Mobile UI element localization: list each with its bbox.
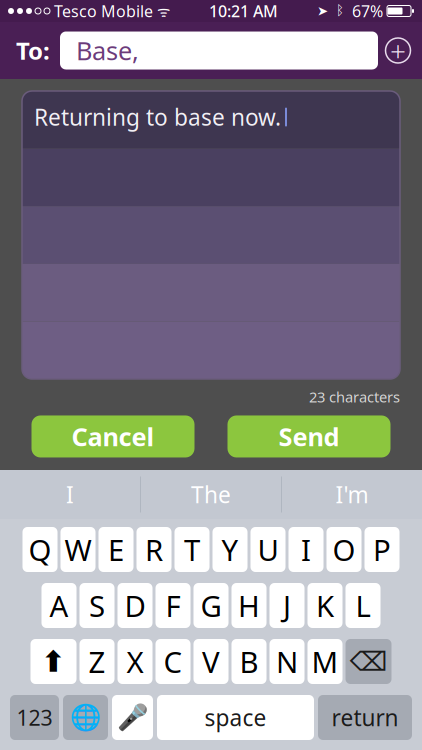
staticText: P: [373, 530, 391, 569]
staticText: Y: [221, 530, 238, 569]
staticText: O: [332, 530, 355, 569]
staticText: H: [238, 586, 260, 625]
staticText: space: [204, 702, 266, 732]
button[interactable]: Cancel: [31, 415, 194, 457]
staticText: Cancel: [71, 420, 154, 453]
staticText: V: [202, 642, 220, 681]
staticText: M: [311, 642, 338, 681]
staticText: Send: [278, 420, 339, 453]
button[interactable]: H: [231, 583, 266, 628]
button[interactable]: X: [117, 639, 152, 684]
button[interactable]: G: [193, 583, 228, 628]
button[interactable]: M: [307, 639, 342, 684]
staticText: The: [191, 479, 231, 509]
button[interactable]: space: [157, 695, 314, 740]
button[interactable]: I'm: [282, 470, 422, 518]
button[interactable]: D: [117, 583, 152, 628]
button[interactable]: U: [250, 527, 285, 572]
button[interactable]: B: [231, 639, 266, 684]
staticText: J: [283, 586, 291, 625]
staticText: E: [108, 530, 124, 569]
button[interactable]: return: [318, 695, 412, 740]
staticText: ᯤ: [153, 1, 170, 21]
staticText: 10:21 AM: [209, 0, 278, 22]
staticText: Tesco Mobile: [50, 0, 153, 22]
button[interactable]: Z: [79, 639, 114, 684]
staticText: D: [124, 586, 145, 625]
button[interactable]: Shift: [30, 639, 76, 684]
button[interactable]: V: [193, 639, 228, 684]
button[interactable]: C: [155, 639, 190, 684]
staticText: K: [316, 586, 334, 625]
staticText: L: [355, 586, 370, 625]
button[interactable]: I: [0, 470, 140, 518]
button[interactable]: Send: [227, 415, 390, 457]
button[interactable]: S: [79, 583, 114, 628]
staticText: ➤: [317, 3, 328, 18]
staticText: +: [390, 32, 406, 69]
button[interactable]: A: [41, 583, 76, 628]
button[interactable]: Base,: [60, 31, 378, 69]
button[interactable]: I: [288, 527, 323, 572]
staticText: I: [301, 530, 311, 569]
staticText: G: [200, 586, 221, 625]
staticText: W: [64, 530, 91, 569]
staticText: 67%: [352, 0, 383, 22]
staticText: B: [239, 642, 258, 681]
button[interactable]: T: [174, 527, 209, 572]
staticText: U: [257, 530, 278, 569]
button[interactable]: L: [345, 583, 380, 628]
staticText: return: [331, 702, 398, 732]
button[interactable]: Add recipient: [378, 30, 418, 70]
staticText: To:: [16, 35, 50, 66]
button[interactable]: J: [269, 583, 304, 628]
staticText: Q: [28, 530, 51, 569]
button[interactable]: P: [364, 527, 399, 572]
button[interactable]: Q: [22, 527, 57, 572]
button[interactable]: Y: [212, 527, 247, 572]
button[interactable]: K: [307, 583, 342, 628]
button[interactable]: N: [269, 639, 304, 684]
staticText: Z: [88, 642, 105, 681]
button[interactable]: 123: [10, 695, 59, 740]
button[interactable]: E: [98, 527, 133, 572]
staticText: Returning to base now.: [34, 102, 281, 132]
staticText: I'm: [335, 479, 368, 509]
staticText: I: [66, 479, 74, 509]
staticText: R: [145, 530, 163, 569]
button[interactable]: W: [60, 527, 95, 572]
staticText: ⌫: [349, 646, 387, 677]
staticText: X: [126, 642, 143, 681]
staticText: 🌐: [69, 703, 101, 732]
button[interactable]: R: [136, 527, 171, 572]
staticText: ᛒ: [328, 4, 352, 17]
staticText: S: [89, 586, 105, 625]
staticText: 123: [16, 703, 52, 732]
staticText: 23 characters: [309, 387, 400, 406]
staticText: ⬆: [41, 645, 66, 678]
staticText: Base,: [76, 34, 139, 67]
button[interactable]: Delete: [345, 639, 391, 684]
button[interactable]: Dictation: [112, 695, 153, 740]
button[interactable]: O: [326, 527, 361, 572]
staticText: A: [49, 586, 68, 625]
button[interactable]: The: [141, 470, 281, 518]
staticText: 🎤: [116, 703, 148, 732]
staticText: C: [163, 642, 182, 681]
staticText: N: [276, 642, 298, 681]
button[interactable]: Next keyboard: [63, 695, 108, 740]
button[interactable]: F: [155, 583, 190, 628]
staticText: T: [184, 530, 200, 569]
staticText: F: [165, 586, 180, 625]
